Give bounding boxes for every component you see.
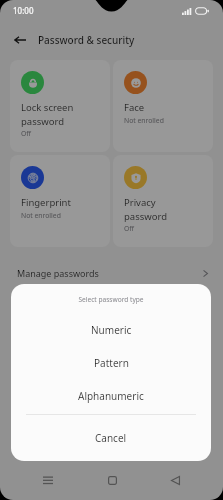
button[interactable]: Privacy password [113,155,213,247]
staticText: 10:00 [13,5,34,16]
staticText: Pattern [94,356,129,370]
button[interactable]: Back [160,465,190,495]
staticText: Not enrolled [21,211,61,220]
button[interactable]: Pattern [11,346,211,379]
staticText: Numeric [91,323,132,337]
staticText: Manage passwords [17,267,202,279]
staticText: Cancel [95,431,127,445]
button[interactable]: Recents [33,465,63,495]
staticText: Alphanumeric [78,389,144,403]
staticText: Off [124,224,134,233]
button[interactable]: Cancel [11,415,211,460]
staticText: Lock screen password [21,101,74,127]
staticText: Fingerprint [21,196,71,209]
staticText: Not enrolled [124,116,164,125]
staticText: Select password type [78,295,144,304]
button[interactable]: Back [6,26,34,54]
button[interactable]: Fingerprint [10,155,110,247]
button[interactable]: Home [97,465,127,495]
button[interactable]: Lock screen password [10,60,110,152]
button[interactable]: Alphanumeric [11,379,211,412]
staticText: Off [21,129,31,138]
button[interactable]: Face [113,60,213,152]
staticText: Privacy password [124,196,168,222]
button[interactable]: Numeric [11,313,211,346]
button[interactable]: Manage passwords [0,258,223,288]
staticText: Face [124,101,145,114]
staticText: Password & security [38,33,135,47]
